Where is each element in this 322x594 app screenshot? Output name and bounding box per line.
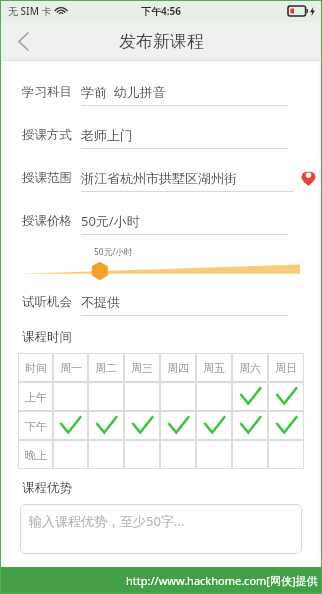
button[interactable]: 学习科目 <box>0 70 322 113</box>
staticText: 课程时间 <box>22 329 72 345</box>
button[interactable] <box>53 411 88 440</box>
staticText: 周一 <box>60 361 82 375</box>
staticText: 试听机会 <box>22 294 72 310</box>
button[interactable] <box>53 440 88 469</box>
staticText: 上午 <box>25 390 47 404</box>
button[interactable]: 授课方式 <box>0 113 322 156</box>
staticText: 50元/小时 <box>81 212 140 230</box>
button[interactable] <box>196 440 232 469</box>
button[interactable] <box>53 382 88 411</box>
button[interactable] <box>88 440 124 469</box>
staticText: 晚上 <box>25 448 47 462</box>
button[interactable] <box>232 440 268 469</box>
button[interactable] <box>268 382 304 411</box>
button[interactable] <box>268 440 304 469</box>
staticText: 周日 <box>275 361 297 375</box>
button[interactable] <box>124 440 160 469</box>
button[interactable] <box>124 382 160 411</box>
button[interactable]: 试听机会 <box>0 280 322 323</box>
button[interactable] <box>232 411 268 440</box>
staticText: 授课价格 <box>22 213 72 229</box>
button[interactable]: 授课范围 <box>0 156 322 199</box>
button[interactable] <box>124 411 160 440</box>
staticText: 学前 幼儿拼音 <box>81 83 166 101</box>
staticText: 课程优势 <box>22 480 72 496</box>
staticText: 授课范围 <box>22 170 72 186</box>
button[interactable]: 授课价格 <box>0 199 322 242</box>
button[interactable]: Back <box>0 22 46 60</box>
staticText: 50元/小时 <box>94 246 133 258</box>
button[interactable] <box>88 411 124 440</box>
button[interactable] <box>160 440 196 469</box>
button[interactable] <box>160 382 196 411</box>
button[interactable]: 输入课程优势，至少50字... <box>20 504 302 554</box>
staticText: 周四 <box>167 361 189 375</box>
staticText: 老师上门 <box>81 127 133 143</box>
button[interactable] <box>196 411 232 440</box>
staticText: 周二 <box>95 361 117 375</box>
button[interactable] <box>88 382 124 411</box>
staticText: 周五 <box>203 361 225 375</box>
button[interactable] <box>268 411 304 440</box>
staticText: 学习科目 <box>22 84 72 100</box>
staticText: 发布新课程 <box>119 31 204 52</box>
button[interactable] <box>196 382 232 411</box>
staticText: 浙江省杭州市拱墅区湖州街 <box>81 170 237 186</box>
button[interactable] <box>232 382 268 411</box>
button[interactable]: 50元/小时 <box>0 242 322 280</box>
staticText: 授课方式 <box>22 127 72 143</box>
staticText: 下午4:56 <box>141 4 181 18</box>
staticText: http://www.hackhome.com[网侠]提供 <box>126 573 318 588</box>
staticText: 输入课程优势，至少50字... <box>29 512 185 530</box>
staticText: 时间 <box>25 361 47 375</box>
button[interactable]: Location <box>294 156 322 199</box>
staticText: 无 SIM 卡 <box>8 4 52 18</box>
staticText: 下午 <box>25 419 47 433</box>
staticText: 周六 <box>239 361 261 375</box>
button[interactable] <box>160 411 196 440</box>
staticText: 不提供 <box>81 294 120 310</box>
staticText: 周三 <box>131 361 153 375</box>
